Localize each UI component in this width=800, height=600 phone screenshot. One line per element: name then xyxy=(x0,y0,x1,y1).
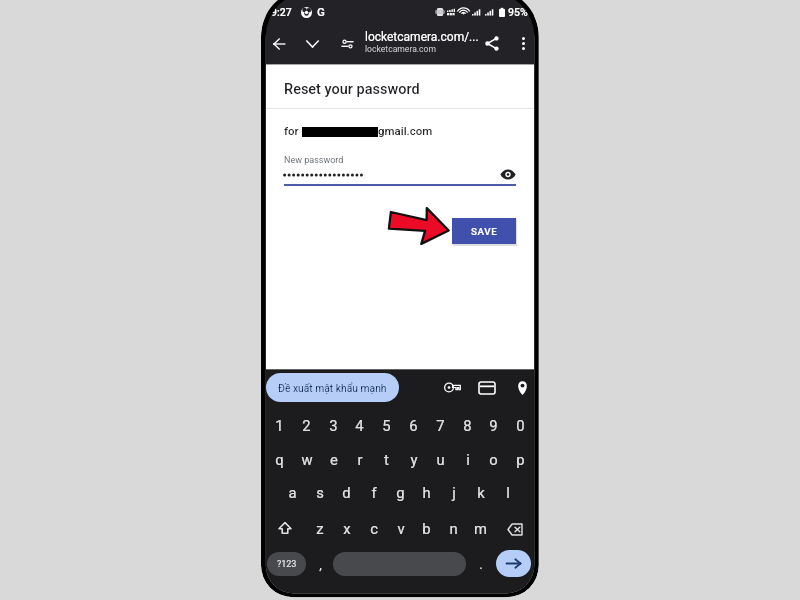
staticText: k xyxy=(477,484,485,501)
staticText: 2 xyxy=(302,417,311,434)
button[interactable]: Payment methods xyxy=(473,373,501,402)
staticText: SAVE xyxy=(471,226,498,237)
button[interactable]: Đề xuất mật khẩu mạnh xyxy=(266,373,399,402)
button[interactable]: s xyxy=(306,477,333,507)
button[interactable]: 5 xyxy=(373,410,400,440)
button[interactable]: Backspace xyxy=(502,515,528,543)
staticText: t xyxy=(384,451,389,468)
button[interactable]: o xyxy=(480,444,507,474)
staticText: 5 xyxy=(382,417,391,434)
staticText: h xyxy=(422,484,431,501)
staticText: m xyxy=(474,520,487,537)
button[interactable]: 9 xyxy=(480,410,507,440)
button[interactable]: j xyxy=(440,477,467,507)
button[interactable]: f xyxy=(360,477,387,507)
staticText: 1 xyxy=(275,417,284,434)
button[interactable]: 6 xyxy=(400,410,427,440)
staticText: p xyxy=(516,451,525,468)
staticText: w xyxy=(301,451,313,468)
button[interactable]: n xyxy=(440,513,467,543)
staticText: u xyxy=(436,451,445,468)
button[interactable]: t xyxy=(373,444,400,474)
button[interactable]: . xyxy=(467,549,494,579)
staticText: v xyxy=(397,520,405,537)
button[interactable]: SAVE xyxy=(452,218,516,244)
button[interactable]: p xyxy=(507,444,534,474)
button[interactable]: w xyxy=(293,444,320,474)
button[interactable]: Space xyxy=(333,552,466,576)
button[interactable]: 4 xyxy=(346,410,373,440)
button[interactable]: 3 xyxy=(320,410,347,440)
button[interactable]: b xyxy=(413,513,440,543)
button[interactable]: z xyxy=(306,513,333,543)
button[interactable]: a xyxy=(279,477,306,507)
staticText: y xyxy=(410,451,418,468)
staticText: x xyxy=(343,520,351,537)
button[interactable]: e xyxy=(320,444,347,474)
staticText: gmail.com xyxy=(378,124,433,137)
button[interactable]: 1 xyxy=(266,410,293,440)
staticText: 9 xyxy=(489,417,498,434)
staticText: q xyxy=(275,451,284,468)
button[interactable]: Downloads xyxy=(298,28,327,59)
button[interactable]: Enter xyxy=(496,550,531,577)
button[interactable]: 7 xyxy=(427,410,454,440)
staticText: n xyxy=(449,520,458,537)
staticText: 4 xyxy=(355,417,364,434)
staticText: Reset your password xyxy=(284,81,420,98)
button[interactable]: i xyxy=(454,444,481,474)
button[interactable]: Back xyxy=(264,28,293,59)
button[interactable]: y xyxy=(400,444,427,474)
staticText: locketcamera.com xyxy=(365,44,437,54)
staticText: 3 xyxy=(329,417,338,434)
staticText: ?123 xyxy=(277,559,297,570)
staticText: d xyxy=(342,484,351,501)
button[interactable]: u xyxy=(427,444,454,474)
staticText: z xyxy=(316,520,324,537)
staticText: . xyxy=(479,557,483,572)
button[interactable]: locketcamera.com/... xyxy=(365,30,479,60)
staticText: 6 xyxy=(409,417,418,434)
button[interactable]: Share xyxy=(478,28,506,59)
button[interactable]: ?123 xyxy=(267,552,306,576)
staticText: c xyxy=(370,520,378,537)
button[interactable]: More options xyxy=(510,28,536,59)
staticText: o xyxy=(489,451,498,468)
button[interactable]: Addresses xyxy=(508,373,536,402)
button[interactable]: x xyxy=(333,513,360,543)
staticText: i xyxy=(466,451,470,468)
button[interactable]: q xyxy=(266,444,293,474)
staticText: locketcamera.com/... xyxy=(365,30,479,44)
staticText: f xyxy=(371,484,377,501)
button[interactable]: v xyxy=(387,513,414,543)
staticText: New password xyxy=(284,155,344,166)
staticText: g xyxy=(396,484,405,501)
staticText: for xyxy=(284,124,302,137)
button[interactable]: r xyxy=(346,444,373,474)
button[interactable]: m xyxy=(467,513,494,543)
staticText: 7 xyxy=(436,417,445,434)
button[interactable]: Passwords xyxy=(438,373,466,402)
staticText: a xyxy=(288,484,297,501)
staticText: 95% xyxy=(508,6,528,18)
button[interactable]: d xyxy=(333,477,360,507)
button[interactable]: Shift xyxy=(272,514,298,542)
button[interactable]: g xyxy=(387,477,414,507)
staticText: 9:27 xyxy=(271,6,292,18)
button[interactable]: l xyxy=(494,477,521,507)
button[interactable]: k xyxy=(467,477,494,507)
button[interactable]: h xyxy=(413,477,440,507)
button[interactable]: Show password xyxy=(498,165,517,184)
button[interactable]: Page info xyxy=(333,28,362,59)
staticText: r xyxy=(357,451,363,468)
button[interactable]: 8 xyxy=(454,410,481,440)
staticText: Đề xuất mật khẩu mạnh xyxy=(278,382,387,394)
button[interactable]: 0 xyxy=(507,410,534,440)
staticText: G xyxy=(317,5,325,18)
staticText: 0 xyxy=(516,417,525,434)
staticText: j xyxy=(452,484,456,501)
staticText: s xyxy=(316,484,324,501)
button[interactable]: 2 xyxy=(293,410,320,440)
button[interactable]: c xyxy=(360,513,387,543)
button[interactable]: , xyxy=(307,549,334,579)
